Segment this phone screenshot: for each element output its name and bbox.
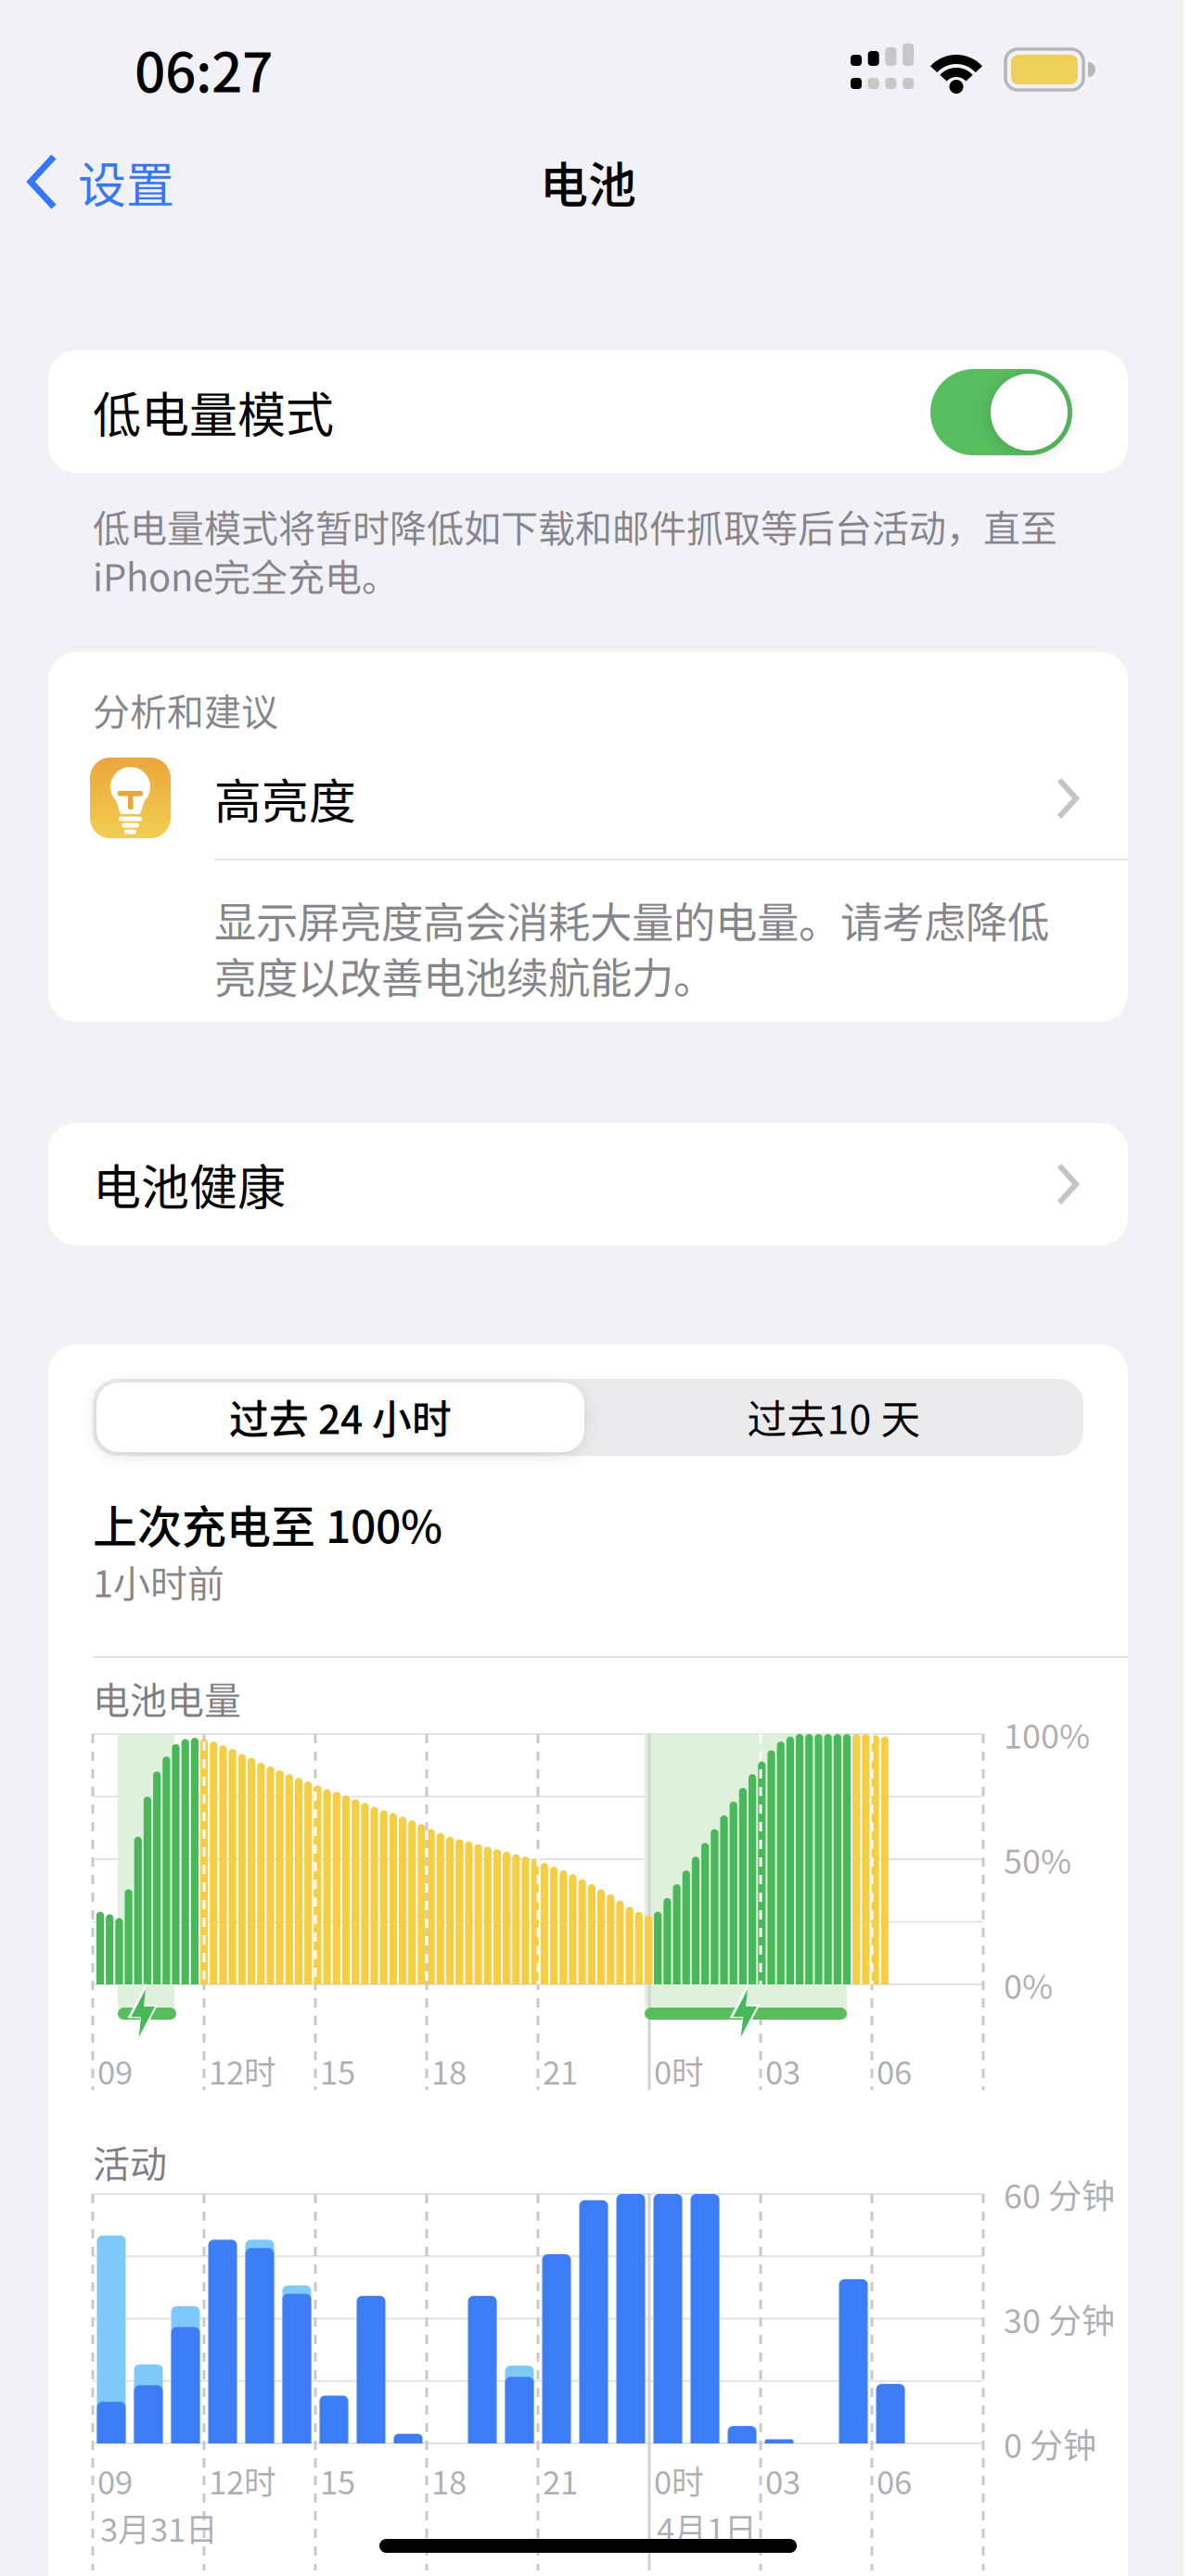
staticText: 低电量模式 (93, 377, 334, 447)
button[interactable]: 电池健康 (48, 1123, 1128, 1245)
staticText: 0% (1004, 1960, 1053, 2009)
staticText: 15 (320, 2457, 355, 2504)
staticText: 12时 (209, 2457, 276, 2504)
staticText: 60 分钟 (1004, 2170, 1115, 2218)
staticText: 0时 (654, 2047, 704, 2094)
staticText: 06 (877, 2457, 912, 2504)
button[interactable]: 返回设置 (0, 0, 206, 93)
staticText: 50% (1004, 1835, 1071, 1883)
staticText: 低电量模式将暂时降低如下载和邮件抓取等后台活动，直至 (93, 499, 1057, 553)
staticText: 06:27 (134, 29, 273, 108)
staticText: 电池电量 (93, 1671, 241, 1725)
staticText: 21 (543, 2457, 578, 2504)
staticText: 设置 (78, 147, 174, 217)
staticText: 09 (97, 2047, 133, 2094)
staticText: 09 (97, 2457, 133, 2504)
staticText: 显示屏亮度高会消耗大量的电量。请考虑降低 (214, 889, 1049, 950)
button[interactable]: 高亮度 (48, 733, 1128, 862)
staticText: 3月31日 (100, 2505, 218, 2551)
staticText: 06 (877, 2047, 912, 2094)
staticText: 0 分钟 (1004, 2419, 1096, 2468)
staticText: 12时 (209, 2047, 276, 2094)
staticText: 03 (765, 2047, 800, 2094)
staticText: 03 (765, 2457, 800, 2504)
staticText: 过去 24 小时 (229, 1388, 452, 1446)
staticText: 21 (543, 2047, 578, 2094)
staticText: 电池健康 (93, 1149, 286, 1219)
staticText: 100% (1004, 1710, 1090, 1758)
staticText: 电池 (540, 147, 636, 217)
staticText: 1小时前 (93, 1554, 224, 1608)
button[interactable]: 低电量模式 (930, 369, 1072, 455)
staticText: 亮度以改善电池续航能力。 (214, 945, 715, 1006)
staticText: 分析和建议 (93, 682, 278, 736)
staticText: iPhone完全充电。 (93, 548, 399, 602)
staticText: 15 (320, 2047, 355, 2094)
staticText: 过去10 天 (747, 1388, 921, 1446)
staticText: 高亮度 (214, 764, 356, 832)
staticText: 4月1日 (657, 2505, 757, 2551)
staticText: 18 (431, 2457, 467, 2504)
button[interactable]: 过去10 天 (584, 1383, 1083, 1452)
staticText: 18 (431, 2047, 467, 2094)
staticText: 活动 (93, 2135, 167, 2188)
button[interactable]: 过去 24 小时 (96, 1383, 584, 1452)
staticText: 上次充电至 100% (93, 1491, 442, 1556)
staticText: 30 分钟 (1004, 2294, 1115, 2343)
staticText: 0时 (654, 2457, 704, 2504)
